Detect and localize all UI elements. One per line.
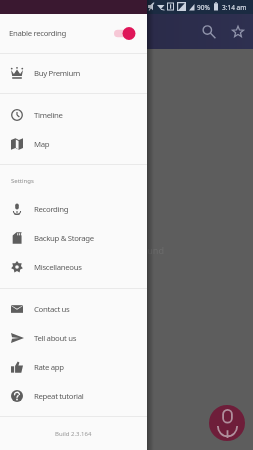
staticText: Backup & Storage — [34, 233, 94, 244]
staticText: Timeline — [34, 110, 63, 121]
staticText: Buy Premium — [34, 68, 80, 79]
staticText: Miscellaneous — [34, 262, 82, 273]
button[interactable]: Repeat tutorial — [0, 382, 147, 410]
button[interactable]: Miscellaneous — [0, 253, 147, 281]
staticText: Map — [34, 139, 50, 150]
staticText: Build 2.3.164 — [55, 430, 92, 438]
button[interactable]: Map — [0, 130, 147, 158]
button[interactable]: Contact us — [0, 295, 147, 323]
staticText: Recording — [34, 204, 69, 215]
button[interactable]: Timeline — [0, 101, 147, 129]
staticText: Enable recording — [9, 28, 66, 39]
button[interactable]: Search — [195, 18, 223, 46]
button[interactable]: Recording — [0, 195, 147, 223]
staticText: Settings — [11, 177, 34, 185]
staticText: No records found — [90, 244, 164, 256]
staticText: Contact us — [34, 304, 70, 315]
button[interactable]: Favorites — [224, 18, 252, 46]
staticText: 3:14 am — [222, 3, 247, 12]
button[interactable]: Buy Premium — [0, 59, 147, 87]
staticText: Repeat tutorial — [34, 391, 84, 402]
button[interactable]: Enable recording — [0, 14, 147, 53]
button[interactable]: Tell about us — [0, 324, 147, 352]
button[interactable]: Record — [209, 405, 245, 441]
staticText: Rate app — [34, 362, 64, 373]
button[interactable]: Backup & Storage — [0, 224, 147, 252]
button[interactable]: Rate app — [0, 353, 147, 381]
staticText: 90% — [197, 3, 210, 12]
staticText: Tell about us — [34, 333, 77, 344]
